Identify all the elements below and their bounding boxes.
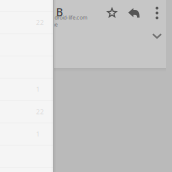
staticText: B (56, 5, 63, 19)
staticText: 22 (36, 18, 44, 27)
staticText: 1 (36, 85, 40, 94)
button[interactable]: Reply (124, 2, 144, 24)
staticText: droid-life.com (54, 14, 87, 21)
staticText: 1 (36, 129, 40, 138)
button[interactable]: Star (102, 2, 122, 24)
staticText: 22 (36, 107, 44, 116)
button[interactable]: Show details (148, 27, 166, 45)
button[interactable]: More options (148, 2, 166, 24)
staticText: to me (44, 21, 58, 28)
